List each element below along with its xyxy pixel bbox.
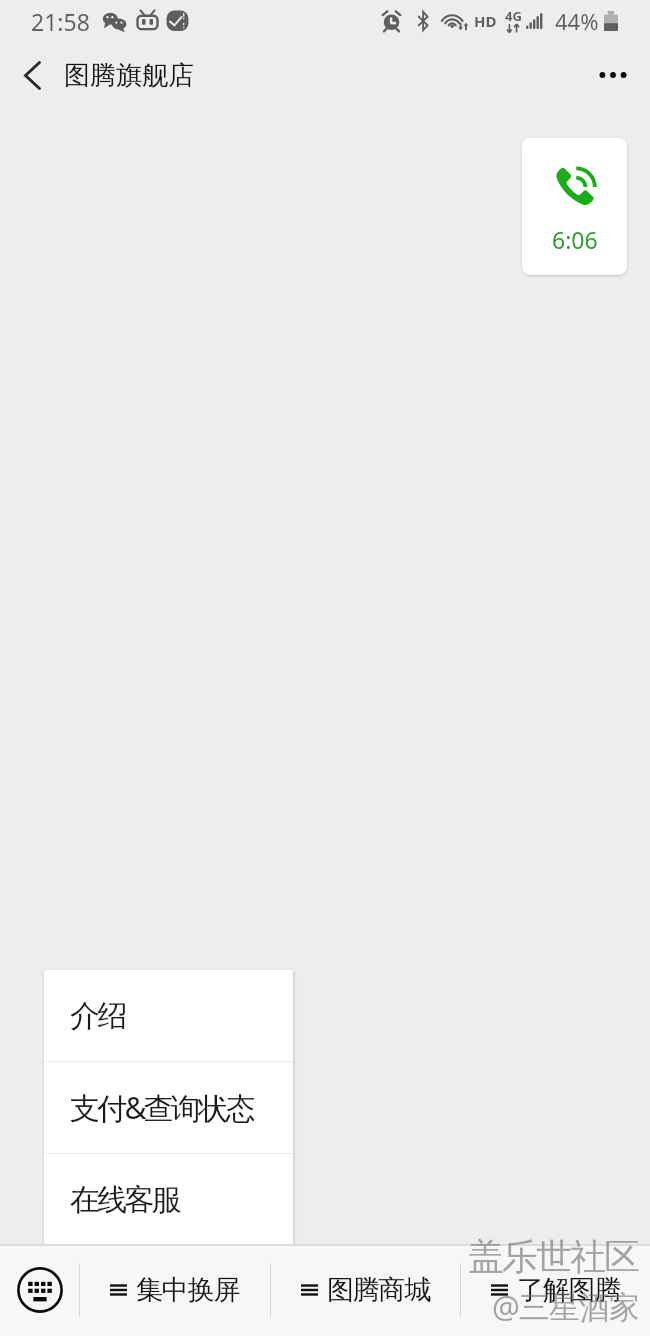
button[interactable]: 集中换屏 <box>80 1244 270 1336</box>
button[interactable]: 支付&查询状态 <box>44 1062 293 1153</box>
staticText: 了解图腾 <box>517 1273 621 1307</box>
button[interactable]: 了解图腾 <box>461 1244 650 1336</box>
button[interactable]: Voice call, 6:06 <box>522 138 627 275</box>
staticText: 集中换屏 <box>136 1273 240 1307</box>
staticText: HD <box>474 11 497 31</box>
staticText: 在线客服 <box>70 1181 179 1219</box>
staticText: 支付&查询状态 <box>70 1087 253 1128</box>
staticText: 介绍 <box>70 997 125 1035</box>
staticText: 盖乐世社区 <box>469 1234 639 1279</box>
button[interactable]: 介绍 <box>44 970 293 1061</box>
staticText: 4G <box>505 7 522 25</box>
staticText: 图腾旗舰店 <box>64 59 194 92</box>
staticText: 44% <box>555 6 599 36</box>
staticText: 21:58 <box>31 6 90 37</box>
button[interactable]: More options <box>580 42 646 108</box>
button[interactable]: Keyboard <box>0 1244 79 1336</box>
button[interactable]: 在线客服 <box>44 1154 293 1245</box>
button[interactable]: 图腾商城 <box>271 1244 460 1336</box>
button[interactable]: Back <box>0 43 64 107</box>
staticText: @三星酒家 <box>492 1285 639 1327</box>
staticText: 图腾商城 <box>327 1273 431 1307</box>
staticText: 6:06 <box>552 224 598 255</box>
